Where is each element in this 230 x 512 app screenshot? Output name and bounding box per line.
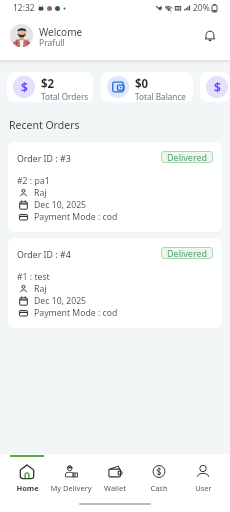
staticText: My Delivery (50, 483, 92, 493)
staticText: Cash (150, 483, 168, 493)
staticText: #2 : pa1 (17, 175, 50, 187)
staticText: $ (214, 79, 221, 95)
staticText: #1 : test (17, 271, 50, 283)
button[interactable]: User (181, 454, 225, 496)
button[interactable]: Cash (137, 454, 181, 496)
staticText: Payment Mode : cod (34, 211, 118, 223)
staticText: 12:32 (13, 2, 35, 14)
button[interactable]: $ (200, 72, 230, 102)
staticText: Home (16, 483, 39, 493)
button[interactable]: Wallet (93, 454, 137, 496)
staticText: 20% (193, 2, 210, 14)
staticText: Total Orders (41, 91, 89, 102)
staticText: Prafull (39, 37, 65, 49)
button[interactable]: Notifications (199, 25, 221, 47)
button[interactable]: My Delivery (49, 454, 93, 496)
staticText: Wallet (104, 483, 126, 493)
staticText: Dec 10, 2025 (34, 295, 87, 307)
staticText: Recent Orders (9, 118, 80, 132)
staticText: Delivered (167, 151, 208, 163)
staticText: Raj (34, 187, 47, 199)
staticText: User (195, 483, 212, 493)
staticText: Raj (34, 283, 47, 295)
staticText: $2 (41, 76, 55, 92)
staticText: Payment Mode : cod (34, 307, 118, 319)
button[interactable]: $ (7, 72, 93, 102)
button[interactable]: Home (5, 454, 49, 496)
button[interactable]: $0 (101, 72, 193, 102)
staticText: Welcome (39, 25, 83, 39)
button[interactable]: Order ID : #3 (8, 142, 222, 232)
staticText: $ (21, 79, 28, 95)
staticText: $0 (135, 76, 149, 92)
staticText: Delivered (167, 247, 208, 259)
staticText: Dec 10, 2025 (34, 199, 87, 211)
staticText: Order ID : #3 (17, 153, 71, 165)
staticText: Order ID : #4 (17, 249, 71, 261)
button[interactable]: Order ID : #4 (8, 238, 222, 328)
staticText: Total Balance (135, 91, 186, 102)
